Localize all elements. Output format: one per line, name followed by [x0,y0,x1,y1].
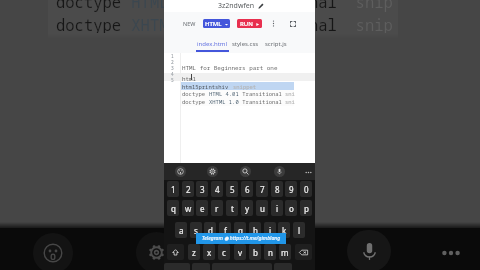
staticText: script.js [265,40,287,48]
staticText: w [185,203,192,214]
button[interactable]: h [249,222,261,238]
button[interactable]: y [241,200,253,216]
staticText: p [304,203,309,214]
button[interactable]: j [264,222,276,238]
staticText: u [260,203,265,214]
button[interactable]: Shift [167,244,184,260]
staticText: v [238,247,243,258]
staticText: d [208,225,213,236]
button[interactable]: 9 [285,181,297,197]
button[interactable]: Fullscreen [287,18,298,29]
button[interactable]: p [300,200,312,216]
staticText: a [179,225,184,236]
staticText: c [222,247,226,258]
staticText: s [194,225,198,236]
button[interactable]: Stickers [175,166,186,177]
button[interactable]: c [218,244,230,260]
button[interactable]: index.html [196,34,229,53]
button[interactable]: w [182,200,194,216]
button[interactable]: d [204,222,216,238]
button[interactable]: RUN [237,19,262,28]
button[interactable]: k [278,222,290,238]
staticText: html [182,75,197,83]
button[interactable]: v [234,244,246,260]
staticText: 3 [200,184,205,195]
button[interactable]: u [256,200,268,216]
button[interactable]: Microphone [347,230,391,270]
staticText: 2 [171,59,174,65]
button[interactable]: Voice input [274,166,285,177]
button[interactable]: doctype [181,90,294,98]
button[interactable]: a [175,222,187,238]
button[interactable]: 1 [167,181,179,197]
button[interactable]: Backspace [295,244,312,260]
staticText: 9 [289,184,294,195]
button[interactable]: Reactions [33,233,73,270]
staticText: 6 [245,184,250,195]
button[interactable]: o [285,200,297,216]
staticText: HTML for Beginners part one [182,64,278,72]
staticText: i [276,203,279,214]
button[interactable]: b [249,244,261,260]
button[interactable]: Search [240,166,251,177]
staticText: snip [285,90,295,98]
staticText: NEW [183,20,196,27]
staticText: 7 [260,184,265,195]
button[interactable]: z [188,244,200,260]
staticText: 1 [171,184,176,195]
staticText: g [238,225,243,236]
button[interactable]: 7 [256,181,268,197]
button[interactable]: 5 [226,181,238,197]
staticText: 2 [186,184,191,195]
button[interactable]: q [167,200,179,216]
staticText: k [282,225,287,236]
button[interactable]: 4 [211,181,223,197]
staticText: 3 [171,65,174,71]
button[interactable]: x [203,244,215,260]
button[interactable]: t [226,200,238,216]
button[interactable]: doctype [181,98,294,106]
button[interactable]: l [293,222,305,238]
button[interactable]: More options [268,18,279,29]
staticText: j [269,225,272,236]
staticText: n [268,247,273,258]
button[interactable]: n [264,244,276,260]
staticText: 1 [171,53,174,59]
button[interactable]: r [211,200,223,216]
button[interactable]: HTML [203,19,230,28]
staticText: snippet [233,83,257,90]
button[interactable]: m [279,244,291,260]
staticText: z [192,247,196,258]
button[interactable]: script.js [261,34,290,53]
button[interactable]: e [196,200,208,216]
button[interactable]: Settings [136,232,177,270]
button[interactable]: g [234,222,246,238]
button[interactable]: 0 [300,181,312,197]
staticText: 4 [171,71,174,77]
staticText: html5printshiv [182,83,229,90]
button[interactable]: 6 [241,181,253,197]
button[interactable]: s [190,222,202,238]
button[interactable]: f [219,222,231,238]
button[interactable]: 8 [271,181,283,197]
button[interactable]: More options [434,236,467,269]
button[interactable]: More [303,167,313,177]
staticText: 3z2ndwfen [218,1,255,11]
button[interactable]: 3 [196,181,208,197]
staticText: snip [285,98,295,106]
button[interactable]: i [271,200,283,216]
staticText: t [231,203,234,214]
staticText: 5 [171,77,174,83]
staticText: Transitional [239,90,282,97]
button[interactable]: styles.css [230,34,261,53]
staticText: Telegram ● https://t.me/gimblang [202,235,281,242]
staticText: doctype [182,90,209,97]
button[interactable]: html5printshiv [181,82,294,90]
button[interactable]: 2 [182,181,194,197]
button[interactable]: Keyboard settings [207,166,218,177]
button[interactable]: NEW [181,18,198,29]
